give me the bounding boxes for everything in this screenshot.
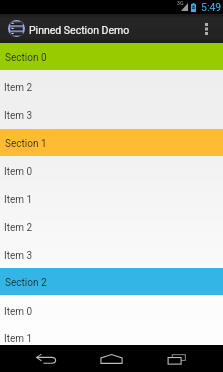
staticText: Item 0 xyxy=(4,166,33,178)
staticText: Section 2 xyxy=(5,277,47,289)
button[interactable]: Item 1 xyxy=(0,185,223,213)
staticText: Item 2 xyxy=(4,222,33,234)
staticText: 3G xyxy=(177,0,184,6)
button[interactable]: Section 1 xyxy=(0,129,223,156)
button[interactable]: More options xyxy=(195,14,223,43)
button[interactable]: Item 1 xyxy=(0,324,223,352)
staticText: Item 2 xyxy=(4,82,33,94)
button[interactable]: Recent apps xyxy=(130,345,223,372)
button[interactable]: Home xyxy=(93,345,130,372)
staticText: Item 1 xyxy=(4,333,33,345)
staticText: Item 3 xyxy=(4,110,33,122)
staticText: Pinned Section Demo xyxy=(29,24,130,36)
staticText: Section 0 xyxy=(5,52,47,64)
staticText: Item 3 xyxy=(4,250,33,262)
button[interactable]: Item 0 xyxy=(0,157,223,185)
button[interactable]: Section 2 xyxy=(0,268,223,295)
staticText: 5:49 xyxy=(201,1,222,13)
button[interactable]: Item 2 xyxy=(0,213,223,241)
button[interactable]: Item 2 xyxy=(0,73,223,101)
button[interactable]: Section 0 xyxy=(0,43,223,70)
button[interactable]: Item 0 xyxy=(0,297,223,325)
staticText: Section 1 xyxy=(5,138,47,150)
staticText: Item 0 xyxy=(4,306,33,318)
button[interactable]: Item 3 xyxy=(0,101,223,129)
button[interactable]: Item 3 xyxy=(0,241,223,269)
button[interactable]: Back xyxy=(0,345,93,372)
staticText: Item 1 xyxy=(4,194,33,206)
button[interactable]: App icon xyxy=(8,20,25,37)
